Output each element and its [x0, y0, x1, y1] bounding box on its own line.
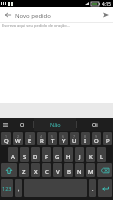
button[interactable]: 6	[59, 132, 68, 145]
button[interactable]: G	[53, 147, 62, 162]
staticText: 6	[62, 134, 65, 139]
staticText: O	[20, 121, 25, 128]
staticText: 4	[40, 134, 43, 139]
button[interactable]: 5	[48, 132, 57, 145]
button[interactable]: L	[97, 147, 106, 162]
staticText: V	[56, 168, 60, 176]
staticText: Q	[4, 137, 9, 145]
staticText: D	[33, 153, 38, 161]
button[interactable]: Back	[0, 7, 15, 22]
staticText: T	[51, 137, 55, 145]
staticText: 5	[51, 134, 54, 139]
staticText: 4:15	[102, 1, 111, 7]
button[interactable]: X	[31, 163, 40, 177]
staticText: N	[77, 168, 82, 176]
button[interactable]: Z	[19, 163, 29, 177]
button[interactable]: .	[89, 179, 96, 197]
button[interactable]: M	[86, 163, 95, 177]
button[interactable]: B	[64, 163, 73, 177]
staticText: G	[55, 153, 60, 161]
staticText: I	[84, 137, 87, 145]
button[interactable]: 3	[25, 132, 35, 145]
staticText: C	[45, 168, 49, 176]
staticText: H	[66, 153, 71, 161]
button[interactable]: Oi	[77, 118, 113, 131]
button[interactable]: A	[8, 147, 18, 162]
staticText: W	[15, 137, 21, 145]
button[interactable]: Keyboard options	[0, 118, 11, 131]
button[interactable]: 9	[92, 132, 101, 145]
button[interactable]: Não	[34, 118, 76, 131]
staticText: O	[94, 137, 99, 145]
button[interactable]: 7	[70, 132, 79, 145]
staticText: P	[106, 137, 110, 145]
button[interactable]: Comma	[15, 179, 22, 197]
staticText: Não	[50, 121, 61, 128]
button[interactable]: 8	[81, 132, 90, 145]
staticText: S	[23, 153, 27, 161]
button[interactable]: 4	[37, 132, 46, 145]
staticText: .	[92, 185, 94, 192]
staticText: ,	[18, 185, 20, 192]
button[interactable]: O	[11, 118, 33, 131]
staticText: E	[28, 137, 32, 145]
staticText: Escreva aqui seu pedido de oração...	[2, 23, 70, 28]
button[interactable]: N	[75, 163, 84, 177]
staticText: Novo pedido	[15, 12, 51, 20]
button[interactable]: Backspace	[97, 163, 112, 177]
button[interactable]: S	[20, 147, 29, 162]
staticText: R	[40, 137, 44, 145]
button[interactable]: Send	[98, 7, 113, 22]
button[interactable]: D	[31, 147, 40, 162]
staticText: Oi	[92, 121, 98, 128]
button[interactable]: 1	[1, 132, 11, 145]
button[interactable]: F	[42, 147, 51, 162]
staticText: 9	[95, 134, 98, 139]
button[interactable]: Enter	[98, 179, 112, 197]
button[interactable]: J	[75, 147, 84, 162]
staticText: 8	[84, 134, 87, 139]
staticText: A	[11, 153, 15, 161]
staticText: X	[34, 168, 38, 176]
staticText: 2	[17, 134, 20, 139]
staticText: L	[100, 153, 104, 161]
staticText: 3	[29, 134, 32, 139]
staticText: 0	[106, 134, 109, 139]
button[interactable]: C	[42, 163, 51, 177]
staticText: U	[72, 137, 77, 145]
button[interactable]: V	[53, 163, 62, 177]
staticText: K	[89, 153, 93, 161]
staticText: F	[45, 153, 49, 161]
staticText: B	[67, 168, 71, 176]
staticText: J	[79, 153, 81, 161]
staticText: Z	[22, 168, 26, 176]
staticText: M	[88, 168, 94, 176]
staticText: 1	[5, 134, 8, 139]
button[interactable]: H	[64, 147, 73, 162]
button[interactable]: 2	[13, 132, 23, 145]
staticText: 123	[2, 185, 12, 192]
button[interactable]: Shift	[1, 163, 17, 177]
staticText: 7	[73, 134, 76, 139]
button[interactable]: K	[86, 147, 95, 162]
staticText: Y	[62, 137, 66, 145]
button[interactable]: 123	[1, 179, 13, 197]
button[interactable]: 0	[103, 132, 112, 145]
